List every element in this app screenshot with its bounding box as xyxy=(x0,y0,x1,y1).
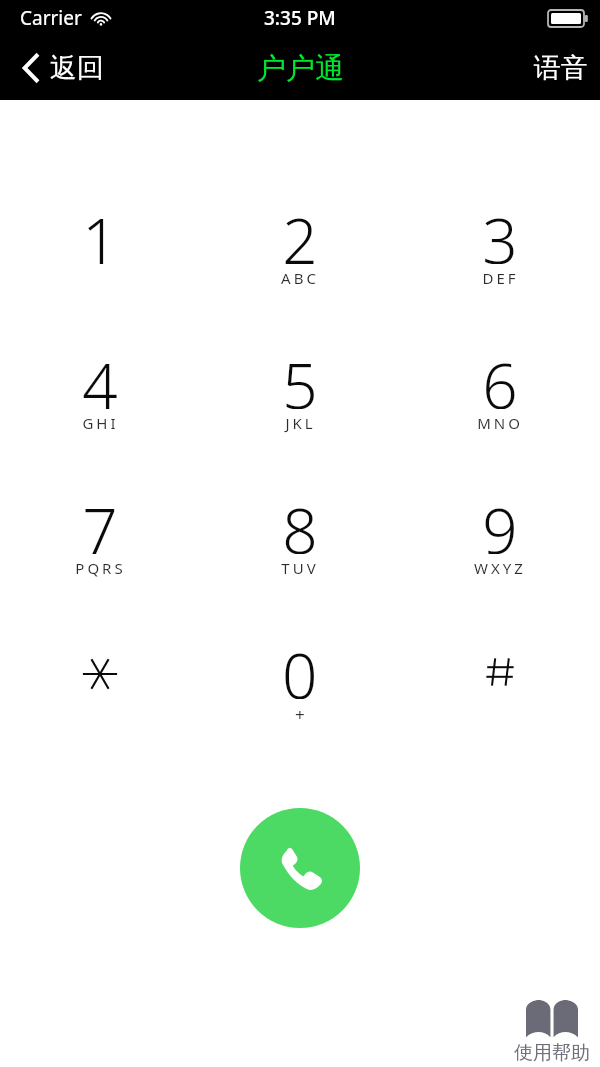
staticText: Carrier xyxy=(20,5,82,31)
staticText: 7 xyxy=(82,488,118,554)
staticText: PQRS xyxy=(75,558,126,578)
button[interactable]: 语音 xyxy=(522,36,600,100)
button[interactable]: 6 xyxy=(400,343,600,488)
button[interactable]: 7 xyxy=(0,488,200,633)
staticText: 6 xyxy=(482,343,518,409)
staticText: DEF xyxy=(482,268,519,288)
staticText: 9 xyxy=(482,488,518,554)
staticText: GHI xyxy=(82,413,119,433)
staticText: 2 xyxy=(282,198,318,264)
staticText: TUV xyxy=(281,558,319,578)
staticText: 3:35 PM xyxy=(264,5,336,31)
button[interactable]: 4 xyxy=(0,343,200,488)
button[interactable]: 返回 xyxy=(0,36,120,100)
button[interactable]: 0 xyxy=(200,633,400,778)
staticText: MNO xyxy=(477,413,523,433)
staticText: 语音 xyxy=(534,51,588,85)
button[interactable]: 9 xyxy=(400,488,600,633)
button[interactable]: 3 xyxy=(400,198,600,343)
staticText: ABC xyxy=(281,268,319,288)
button[interactable]: 1 xyxy=(0,198,200,343)
button[interactable]: 2 xyxy=(200,198,400,343)
staticText: 8 xyxy=(282,488,318,554)
staticText: 0 xyxy=(282,633,318,699)
button[interactable]: 5 xyxy=(200,343,400,488)
staticText: 使用帮助 xyxy=(514,1041,590,1065)
staticText: 4 xyxy=(82,343,118,409)
button[interactable] xyxy=(0,633,200,778)
button[interactable]: 使用帮助 xyxy=(514,1000,600,1067)
staticText: JKL xyxy=(285,413,316,433)
staticText: 返回 xyxy=(50,51,104,85)
button[interactable]: 8 xyxy=(200,488,400,633)
staticText: 3 xyxy=(482,198,518,264)
staticText: 1 xyxy=(82,198,118,264)
button[interactable]: Call xyxy=(240,808,360,928)
staticText: 5 xyxy=(282,343,318,409)
staticText: WXYZ xyxy=(474,558,526,578)
staticText: 户户通 xyxy=(257,50,344,87)
button[interactable] xyxy=(400,633,600,778)
staticText: + xyxy=(295,703,305,726)
